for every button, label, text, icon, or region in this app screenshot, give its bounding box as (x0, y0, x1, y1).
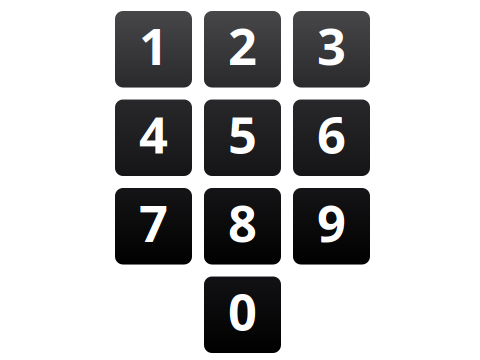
staticText: 6 (317, 100, 346, 167)
staticText: 7 (139, 189, 168, 256)
staticText: 3 (317, 12, 346, 79)
staticText: 2 (228, 12, 257, 79)
staticText: 5 (228, 100, 257, 167)
button[interactable]: 5 (204, 99, 281, 176)
button[interactable]: 3 (293, 11, 370, 87)
button[interactable]: 1 (115, 11, 192, 87)
staticText: 8 (228, 189, 257, 256)
staticText: 9 (317, 189, 346, 256)
button[interactable]: 9 (293, 188, 370, 264)
button[interactable]: 6 (293, 99, 370, 176)
button[interactable]: 8 (204, 188, 281, 264)
staticText: 4 (139, 100, 168, 167)
staticText: 1 (139, 12, 168, 79)
button[interactable]: 7 (115, 188, 192, 264)
staticText: 0 (228, 277, 257, 344)
button[interactable]: 4 (115, 99, 192, 176)
button[interactable]: 2 (204, 11, 281, 87)
button[interactable]: 0 (204, 276, 281, 353)
